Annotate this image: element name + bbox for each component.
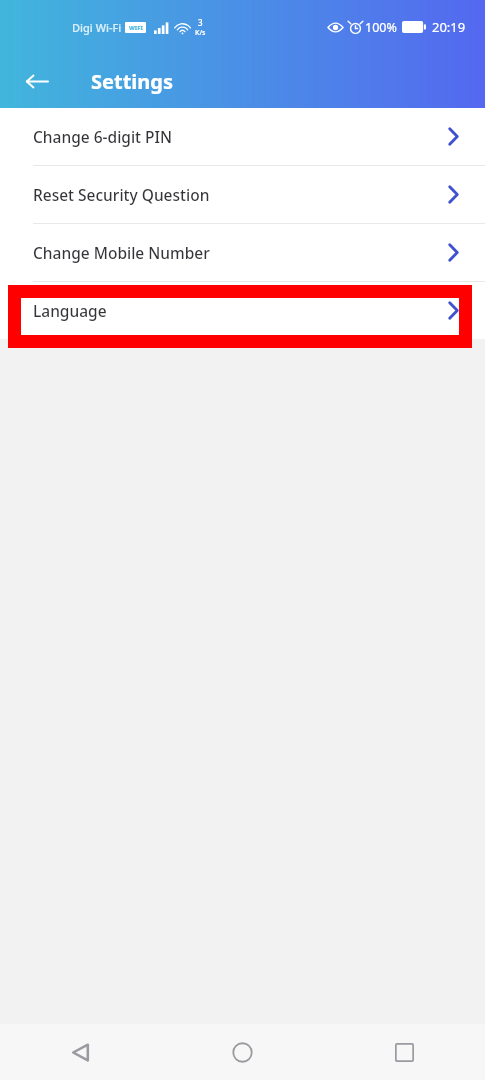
staticText: 3 — [198, 17, 203, 28]
button[interactable]: Home — [161, 1024, 323, 1080]
button[interactable]: Back — [0, 1024, 161, 1080]
staticText: WIFI — [129, 24, 143, 32]
staticText: Settings — [91, 68, 173, 95]
button[interactable]: Change Mobile Number — [0, 224, 485, 281]
button[interactable]: Back — [14, 58, 60, 104]
staticText: 20:19 — [432, 18, 466, 36]
button[interactable]: Recent apps — [323, 1024, 485, 1080]
staticText: Reset Security Question — [33, 184, 210, 205]
staticText: Digi Wi-Fi — [72, 20, 122, 35]
staticText: 100% — [365, 19, 397, 36]
button[interactable]: Reset Security Question — [0, 166, 485, 223]
staticText: Change Mobile Number — [33, 242, 210, 263]
staticText: Change 6-digit PIN — [33, 126, 173, 147]
staticText: Language — [33, 300, 107, 321]
staticText: K/s — [195, 28, 206, 38]
button[interactable]: Language — [0, 282, 485, 339]
button[interactable]: Change 6-digit PIN — [0, 108, 485, 165]
